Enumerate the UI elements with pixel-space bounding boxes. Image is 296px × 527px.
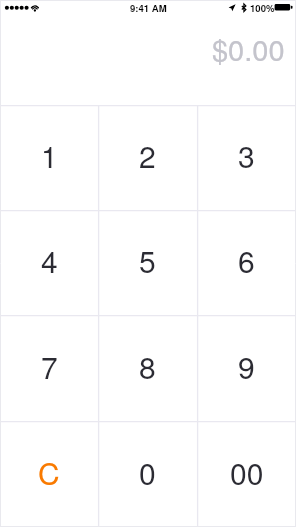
staticText: 5 bbox=[139, 239, 156, 282]
button[interactable]: 0 bbox=[98, 421, 197, 527]
button[interactable]: 5 bbox=[98, 210, 197, 315]
staticText: 100% bbox=[250, 1, 275, 15]
staticText: 2 bbox=[139, 134, 156, 177]
staticText: 8 bbox=[139, 345, 156, 388]
button[interactable]: 9 bbox=[197, 315, 296, 421]
button[interactable]: 00 bbox=[197, 421, 296, 527]
staticText: 4 bbox=[41, 239, 58, 282]
staticText: 9:41 AM bbox=[130, 1, 167, 15]
staticText: $0.00 bbox=[212, 28, 285, 70]
button[interactable]: C bbox=[0, 421, 98, 527]
staticText: 3 bbox=[238, 134, 255, 177]
button[interactable]: 8 bbox=[98, 315, 197, 421]
staticText: 00 bbox=[230, 451, 264, 494]
staticText: C bbox=[38, 451, 60, 494]
button[interactable]: 1 bbox=[0, 105, 98, 210]
staticText: 1 bbox=[41, 134, 58, 177]
button[interactable]: 2 bbox=[98, 105, 197, 210]
staticText: 7 bbox=[41, 345, 58, 388]
button[interactable]: 3 bbox=[197, 105, 296, 210]
other: Status bar bbox=[0, 0, 296, 20]
button[interactable]: 7 bbox=[0, 315, 98, 421]
button[interactable]: 6 bbox=[197, 210, 296, 315]
staticText: 6 bbox=[238, 239, 255, 282]
staticText: 9 bbox=[238, 345, 255, 388]
staticText: 0 bbox=[139, 451, 156, 494]
button[interactable]: 4 bbox=[0, 210, 98, 315]
